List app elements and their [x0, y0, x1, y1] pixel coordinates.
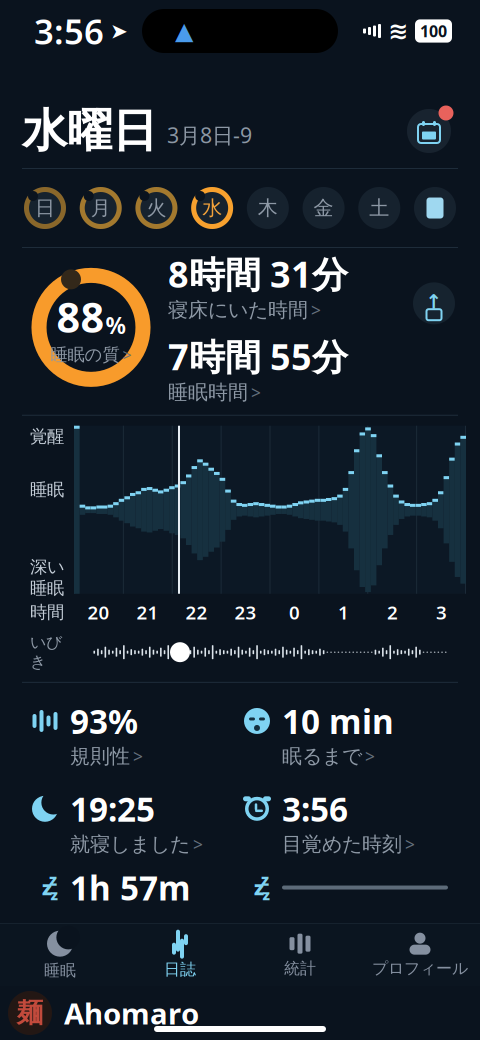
staticText: > [365, 745, 375, 768]
staticText: 覚醒 [30, 426, 64, 447]
staticText: ≋ [388, 17, 408, 45]
button[interactable]: 88 [20, 256, 162, 398]
staticText: 100 [420, 20, 447, 42]
staticText: 深い [30, 556, 65, 578]
staticText: 1 [338, 600, 349, 624]
staticText: 規則性 [70, 744, 130, 769]
staticText: 寝床にいた時間 [168, 298, 308, 322]
staticText: 睡眠 [30, 578, 64, 599]
staticText: 23 [234, 600, 256, 624]
staticText: プロフィール [372, 959, 468, 978]
staticText: ➤ [110, 19, 128, 43]
staticText: 22 [185, 600, 207, 624]
staticText: 睡眠の質 [50, 344, 119, 365]
staticText: ▲ [175, 17, 193, 45]
staticText: 93% [70, 699, 138, 743]
staticText: 3月8日-9 [167, 121, 252, 149]
staticText: 3:56 [34, 8, 104, 54]
staticText: 日 [35, 196, 55, 220]
staticText: 21 [136, 600, 158, 624]
button[interactable]: 93% [28, 699, 240, 769]
staticText: 就寝しました [70, 832, 190, 856]
staticText: 金 [314, 196, 334, 220]
button[interactable]: 統計 [240, 927, 360, 983]
button[interactable]: プロフィール [360, 927, 480, 983]
button[interactable]: 3:56 [240, 787, 452, 856]
staticText: 水曜日 [22, 103, 157, 159]
staticText: 睡眠 [30, 479, 64, 500]
staticText: > [311, 299, 321, 322]
staticText: z [50, 885, 57, 904]
staticText: Ahomaro [64, 993, 199, 1032]
button[interactable]: z [28, 865, 240, 910]
staticText: 木 [258, 196, 278, 220]
staticText: 睡眠時間 [168, 380, 248, 405]
staticText: 8時間 31分 [168, 250, 348, 298]
staticText: 麺 [16, 997, 43, 1029]
staticText: いびき [30, 632, 62, 672]
button[interactable]: 日誌 [120, 927, 240, 983]
button[interactable]: Calendar [400, 102, 458, 160]
staticText: 睡眠 [44, 961, 76, 980]
staticText: 眠るまで [282, 744, 362, 769]
staticText: z [254, 874, 264, 901]
staticText: 19:25 [70, 787, 155, 831]
staticText: 2 [387, 600, 398, 624]
staticText: ↑ [425, 290, 442, 313]
staticText: z [42, 874, 52, 901]
staticText: > [133, 745, 143, 768]
staticText: z [49, 869, 57, 890]
staticText: 目覚めた時刻 [282, 832, 402, 856]
staticText: 土 [369, 196, 389, 220]
staticText: % [105, 310, 125, 340]
staticText: 水 [202, 196, 222, 220]
staticText: 3:56 [282, 787, 348, 831]
staticText: 1h 57m [70, 865, 191, 910]
button[interactable]: z [240, 872, 452, 902]
staticText: > [405, 833, 415, 856]
staticText: 日誌 [164, 960, 196, 979]
staticText: 88 [56, 289, 104, 344]
button[interactable]: 19:25 [28, 787, 240, 856]
button[interactable]: Notes [412, 185, 458, 231]
staticText: > [251, 381, 261, 404]
staticText: > [122, 344, 131, 365]
staticText: 3 [436, 600, 447, 624]
button[interactable]: 8時間 31分 [168, 250, 374, 322]
button[interactable]: Share [408, 277, 460, 329]
staticText: 統計 [284, 959, 316, 978]
button[interactable]: 睡眠 [0, 927, 120, 983]
staticText: 20 [87, 600, 109, 624]
staticText: 0 [289, 600, 300, 624]
staticText: 10 min [282, 699, 394, 743]
staticText: z [262, 885, 269, 904]
staticText: 火 [146, 196, 166, 220]
staticText: z [261, 869, 269, 890]
staticText: > [193, 833, 203, 856]
button[interactable]: 10 min [240, 699, 452, 769]
staticText: 時間 [30, 601, 64, 623]
staticText: 7時間 55分 [168, 332, 348, 380]
staticText: 月 [91, 196, 111, 220]
button[interactable]: 7時間 55分 [168, 332, 374, 405]
